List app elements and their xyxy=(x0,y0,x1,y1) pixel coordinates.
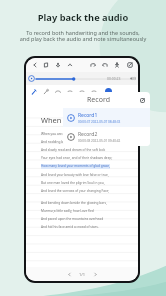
button[interactable]: Next page xyxy=(92,271,99,278)
staticText: To record both handwriting and the sound… xyxy=(0,29,166,43)
button[interactable]: Record1 xyxy=(63,108,150,127)
staticText: Murmur,a little sadly, how Love fled xyxy=(41,209,94,213)
button[interactable]: Volume xyxy=(129,75,136,82)
staticText: But one man loved the pilgrim Soul in yo… xyxy=(41,181,105,185)
staticText: Record1 xyxy=(78,112,98,119)
button[interactable]: Back xyxy=(31,61,39,69)
button[interactable]: Share xyxy=(113,61,121,69)
button[interactable]: Play xyxy=(28,75,35,82)
staticText: Record xyxy=(87,95,110,105)
staticText: And bending down beside the glowing bars… xyxy=(41,201,107,205)
button[interactable]: Edit records xyxy=(139,97,146,104)
staticText: Record2 xyxy=(78,131,98,138)
button[interactable]: Edit xyxy=(126,61,134,69)
button[interactable]: Pages xyxy=(42,61,50,69)
staticText: And hid his face amid a crowd of stars. xyxy=(41,225,99,229)
staticText: And nodding by the fire, take down this … xyxy=(41,140,110,144)
staticText: 00:00:23 xyxy=(107,76,121,81)
staticText: How many loved your moments of glad grac… xyxy=(41,164,110,168)
button[interactable]: Previous page xyxy=(66,271,73,278)
button[interactable]: Highlighter xyxy=(54,88,62,96)
button[interactable]: Redo xyxy=(101,61,109,69)
button[interactable]: Ruler xyxy=(90,88,98,96)
staticText: And slowly read and dream of the soft lo… xyxy=(41,148,106,152)
staticText: Your eyes had once, and of their shadows… xyxy=(41,156,113,160)
staticText: And paced upon the mountains overhead xyxy=(41,217,104,221)
staticText: 00:00:37 2022-05-07 08:48:33 xyxy=(78,120,121,124)
button[interactable]: Expand xyxy=(66,61,74,69)
button[interactable]: Microphone xyxy=(54,61,62,69)
button[interactable]: Pen xyxy=(30,88,38,96)
staticText: Play back the audio xyxy=(0,11,166,24)
button[interactable]: Eraser xyxy=(42,88,50,96)
button[interactable]: Record2 xyxy=(63,127,150,146)
button[interactable]: Lasso xyxy=(78,88,86,96)
staticText: 1/1 xyxy=(79,272,86,277)
button[interactable]: Undo xyxy=(89,61,97,69)
staticText: And loved the sorrows of your changing F… xyxy=(41,189,110,193)
staticText: 00:00:38 2022-05-01 09:40:42 xyxy=(78,139,121,143)
staticText: And loved your beauty with love false or… xyxy=(41,173,109,177)
button[interactable]: Shapes xyxy=(66,88,74,96)
staticText: When you xyxy=(41,115,77,125)
button[interactable]: Colour xyxy=(105,88,112,95)
staticText: When you are old and grey and full of sl… xyxy=(41,132,107,136)
